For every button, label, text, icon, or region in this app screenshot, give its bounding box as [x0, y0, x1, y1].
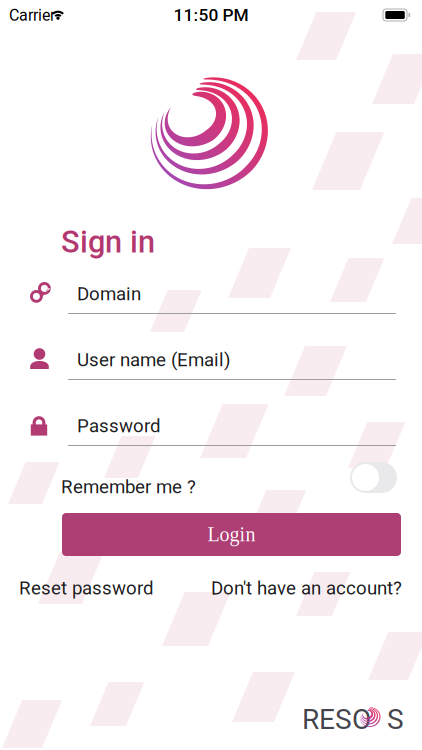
staticText: 11:50 PM [173, 5, 248, 25]
staticText: Password [77, 415, 161, 437]
staticText: Don't have an account? [211, 577, 402, 599]
staticText: Login [207, 523, 255, 545]
staticText: S [387, 703, 404, 736]
staticText: Domain [77, 283, 141, 305]
button[interactable]: Reset password [19, 578, 169, 598]
staticText: Remember me ? [61, 476, 196, 498]
staticText: Carrier [9, 6, 55, 25]
staticText: User name (Email) [77, 349, 230, 371]
button[interactable]: Remember me [350, 462, 397, 493]
staticText: Sign in [61, 224, 155, 260]
button[interactable]: Login [62, 513, 401, 556]
staticText: RESO [302, 703, 371, 736]
staticText: Reset password [19, 577, 154, 599]
button[interactable]: Don't have an account? [192, 578, 402, 598]
